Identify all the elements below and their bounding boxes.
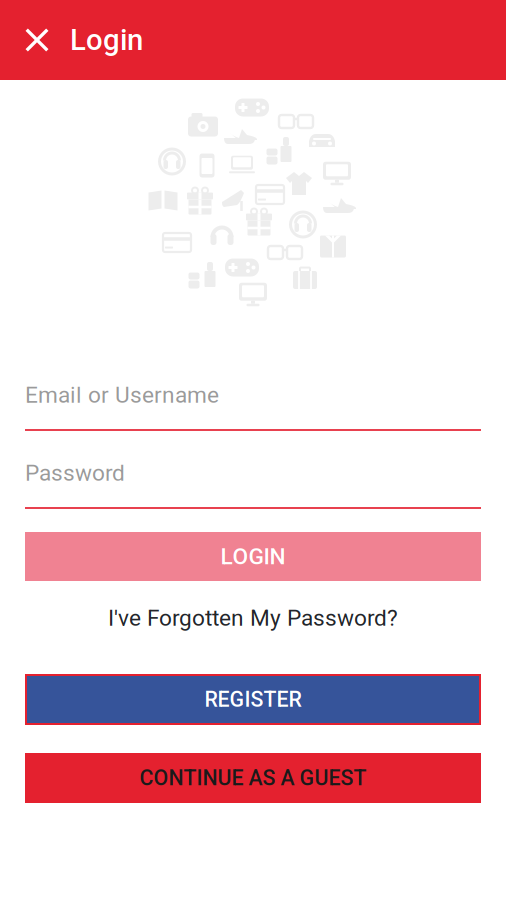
button[interactable]: CONTINUE AS A GUEST [25, 753, 481, 803]
staticText: Login [70, 23, 143, 57]
staticText: Password [25, 460, 125, 486]
staticText: REGISTER [204, 687, 301, 712]
button[interactable]: Close [0, 0, 70, 80]
staticText: CONTINUE AS A GUEST [139, 765, 366, 790]
button[interactable]: REGISTER [25, 674, 481, 725]
staticText: Email or Username [25, 382, 219, 408]
button[interactable]: I've Forgotten My Password? [108, 603, 398, 633]
staticText: I've Forgotten My Password? [108, 605, 398, 631]
button[interactable]: LOGIN [25, 532, 481, 581]
staticText: LOGIN [220, 543, 285, 570]
